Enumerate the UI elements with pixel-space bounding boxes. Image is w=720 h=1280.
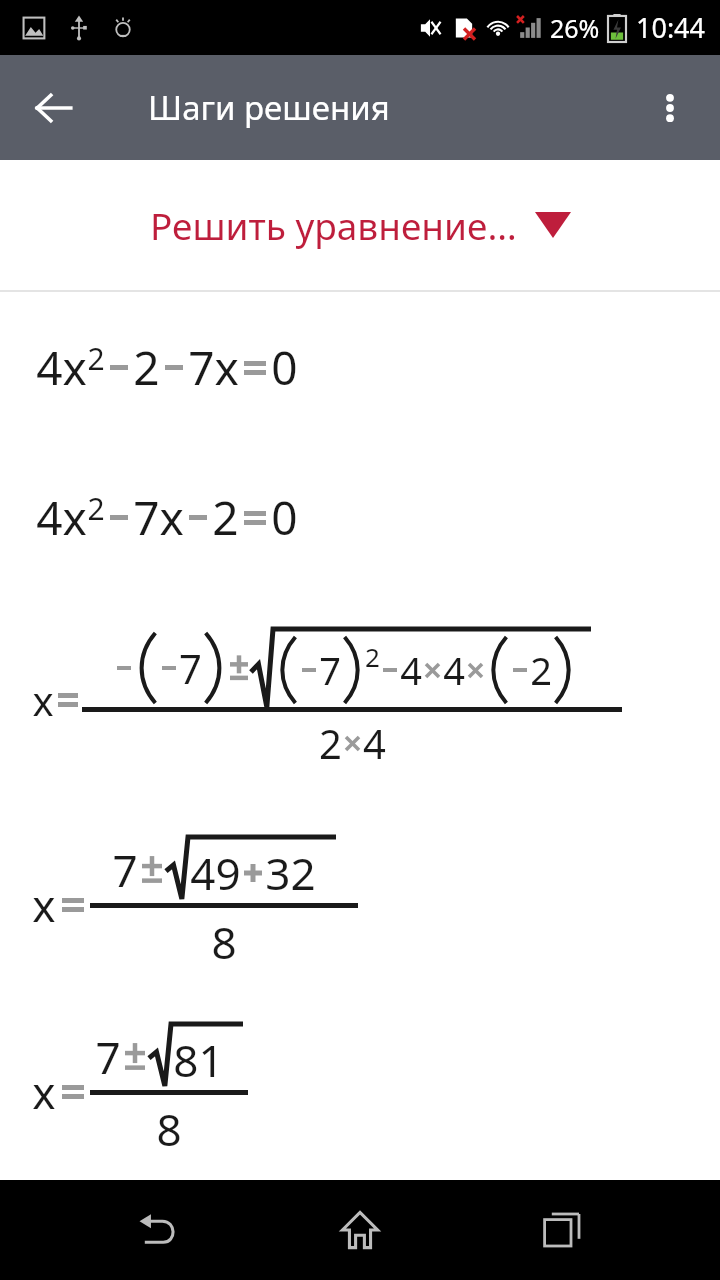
staticText: 32 — [265, 843, 316, 903]
staticText: 2 — [365, 639, 380, 674]
staticText: 26% — [550, 11, 600, 45]
staticText: 4 — [363, 716, 386, 770]
staticText: 8 — [156, 1099, 182, 1159]
staticText: x — [32, 1062, 56, 1122]
staticText: 7 — [112, 840, 138, 900]
staticText: x — [32, 875, 56, 935]
staticText: 0 — [271, 486, 298, 549]
staticText: 4 — [443, 644, 465, 696]
staticText: 8 — [211, 912, 237, 972]
staticText: 81 — [173, 1030, 224, 1090]
staticText: 0 — [271, 336, 298, 399]
button[interactable]: Главный экран — [315, 1185, 405, 1275]
button[interactable]: Ещё — [634, 72, 706, 144]
staticText: Решить уравнение… — [150, 200, 517, 250]
staticText: 4 — [400, 644, 422, 696]
staticText: Шаги решения — [148, 85, 390, 130]
button[interactable]: Решить уравнение… — [0, 160, 720, 290]
staticText: 7 — [179, 641, 202, 695]
staticText: 2 — [133, 336, 160, 399]
staticText: 7 — [95, 1027, 121, 1087]
staticText: 4x — [36, 486, 87, 549]
button[interactable]: Назад — [113, 1185, 203, 1275]
staticText: 2 — [319, 716, 342, 770]
staticText: 7 — [319, 644, 341, 696]
button[interactable]: Назад — [18, 72, 90, 144]
staticText: 49 — [190, 843, 241, 903]
staticText: 2 — [87, 338, 105, 379]
staticText: 7x — [188, 336, 239, 399]
staticText: 2 — [87, 488, 105, 529]
staticText: 10:44 — [636, 9, 706, 46]
staticText: 2 — [530, 644, 552, 696]
staticText: 4x — [36, 336, 87, 399]
staticText: 2 — [212, 486, 239, 549]
staticText: 7x — [133, 486, 184, 549]
staticText: x — [32, 673, 54, 727]
button[interactable]: Последние приложения — [518, 1185, 608, 1275]
